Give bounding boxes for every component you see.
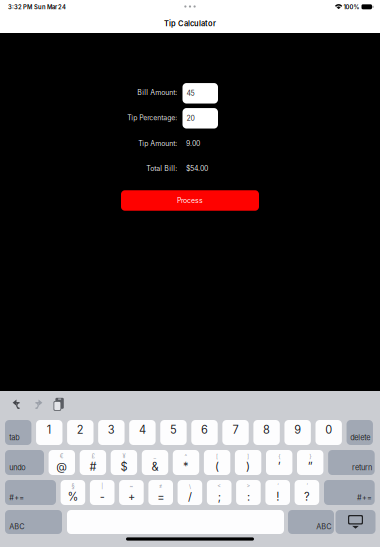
staticText: 8 [263,423,270,436]
staticText: ( [215,460,219,473]
staticText: + [128,490,135,503]
staticText: $54.00 [186,164,208,173]
button[interactable]: ” [297,450,323,475]
staticText: @ [56,460,67,473]
staticText: tab [9,433,19,442]
staticText: 45 [186,89,194,97]
staticText: ‘ [277,483,278,490]
button[interactable]: 2 [67,420,93,445]
button[interactable]: return [328,450,375,475]
staticText: ABC [9,522,24,531]
staticText: Tip Amount: [138,139,177,148]
staticText: Tip Percentage: [127,114,177,122]
button[interactable]: #+= [324,480,375,505]
staticText: ^ [184,453,187,460]
staticText: : [247,490,250,503]
button[interactable]: $ [111,450,137,475]
button[interactable]: undo [5,450,44,475]
staticText: 9.00 [186,139,200,148]
staticText: #+= [9,493,24,502]
button[interactable]: Paste [51,396,64,412]
button[interactable]: 3 [98,420,124,445]
button[interactable]: #+= [5,480,56,505]
button[interactable]: @ [49,450,75,475]
staticText: = [157,490,164,503]
staticText: ] [247,453,249,460]
staticText: $ [120,460,127,473]
staticText: [ [216,453,218,460]
staticText: % [67,490,78,503]
button[interactable]: ( [204,450,230,475]
button[interactable]: 9 [284,420,311,445]
staticText: € [60,453,64,460]
staticText: 20 [186,114,194,122]
staticText: & [151,460,158,473]
staticText: ¥ [122,453,125,460]
button[interactable]: ? [295,480,319,505]
staticText: delete [350,433,370,442]
button[interactable]: 4 [129,420,156,445]
button[interactable]: # [80,450,106,475]
button[interactable]: delete [346,420,373,445]
button[interactable]: Process [121,190,259,211]
staticText: 1 [47,423,52,436]
staticText: _ [153,453,156,460]
button[interactable]: 6 [191,420,218,445]
button[interactable]: ; [207,480,231,505]
button[interactable]: ! [265,480,290,505]
button[interactable]: 5 [160,420,187,445]
staticText: 6 [201,423,208,436]
staticText: ~ [129,483,133,490]
button[interactable]: Hide keyboard [335,510,375,534]
button[interactable]: 8 [253,420,280,445]
button[interactable]: ABC [288,510,334,534]
staticText: ABC [316,522,331,531]
staticText: 2 [77,423,84,436]
staticText: * [183,460,189,473]
staticText: ’ [306,483,307,490]
button[interactable]: : [236,480,261,505]
button[interactable]: & [142,450,168,475]
button[interactable]: - [90,480,114,505]
staticText: § [71,483,74,490]
button[interactable]: % [61,480,85,505]
button[interactable]: ’ [266,450,292,475]
staticText: > [246,483,250,490]
button[interactable]: + [119,480,144,505]
staticText: 0 [325,423,332,436]
staticText: < [217,483,221,490]
staticText: ; [218,490,221,503]
staticText: 7 [232,423,238,436]
button[interactable]: = [148,480,173,505]
staticText: £ [91,453,94,460]
staticText: 9 [294,423,301,436]
staticText: { [278,453,280,460]
staticText: ’ [278,460,281,473]
staticText: \ [189,483,191,490]
button[interactable]: tab [5,420,31,445]
button[interactable]: * [173,450,199,475]
staticText: Tip Calculator [164,19,216,28]
button[interactable]: 0 [315,420,342,445]
button[interactable]: 7 [222,420,249,445]
staticText: 4 [139,423,146,436]
staticText: - [100,490,105,503]
button[interactable]: Undo [11,397,23,410]
staticText: 3 [108,423,115,436]
button[interactable]: / [178,480,202,505]
staticText: return [352,463,372,472]
staticText: 100% [343,3,359,11]
button[interactable]: Redo [32,397,44,410]
staticText: 5 [170,423,177,436]
staticText: | [101,483,103,490]
staticText: #+= [357,493,372,502]
staticText: Bill Amount: [137,88,177,97]
button[interactable]: ) [235,450,261,475]
button[interactable]: 1 [36,420,62,445]
staticText: # [89,460,96,473]
staticText: ? [304,490,310,503]
staticText: Sun Mar 24 [34,3,66,11]
button[interactable]: ABC [5,510,62,534]
staticText: ≠ [159,483,163,490]
